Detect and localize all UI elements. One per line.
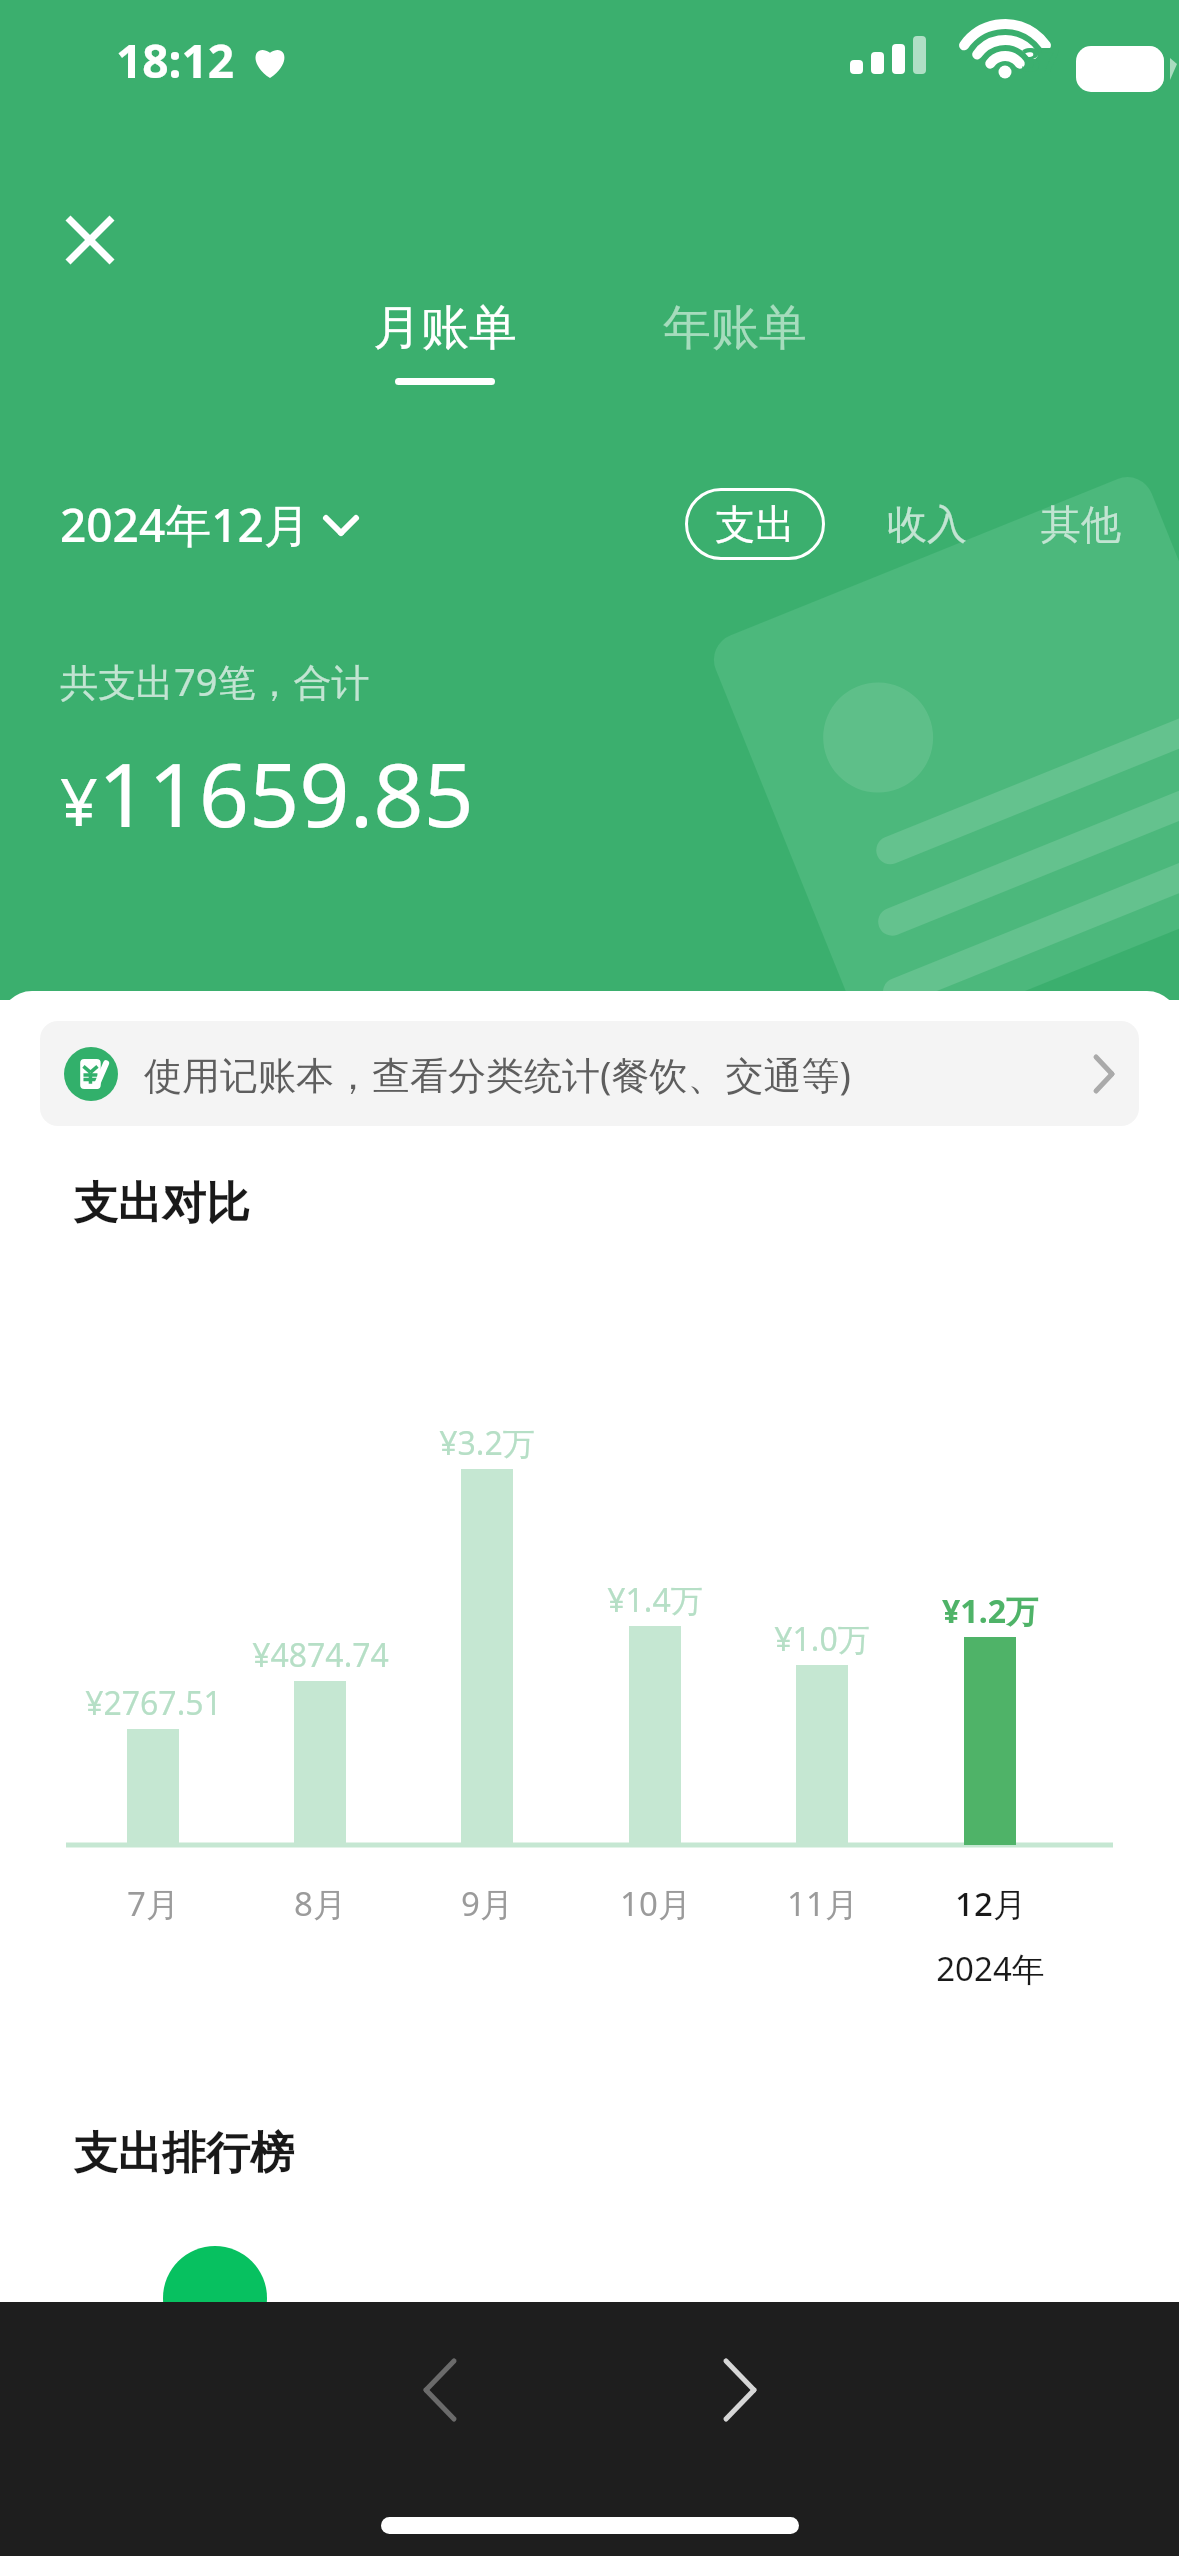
button[interactable]: 月账单 xyxy=(345,290,545,393)
staticText: 使用记账本，查看分类统计(餐饮、交通等) xyxy=(144,1048,851,1100)
staticText: ¥1.4万 xyxy=(607,1578,703,1622)
staticText: ¥4874.74 xyxy=(252,1633,389,1677)
staticText: 11659.85 xyxy=(98,733,474,853)
staticText: 37 xyxy=(1021,36,1060,82)
staticText: 10月 xyxy=(620,1881,691,1926)
staticText: 支出 xyxy=(715,499,795,549)
staticText: 7月 xyxy=(127,1881,179,1926)
staticText: ¥3.2万 xyxy=(439,1421,535,1465)
staticText: 2024年12月 xyxy=(60,493,310,556)
button[interactable]: 年账单 xyxy=(635,290,835,393)
button[interactable]: 后退 xyxy=(380,2330,500,2450)
button[interactable]: 支出 xyxy=(685,488,825,560)
staticText: ¥2767.51 xyxy=(85,1681,222,1725)
staticText: 月账单 xyxy=(373,298,517,358)
staticText: 2024年 xyxy=(936,1946,1045,1991)
button[interactable]: 收入 xyxy=(875,485,979,563)
staticText: 收入 xyxy=(887,499,967,549)
staticText: 共支出79笔，合计 xyxy=(60,655,370,707)
staticText: ¥1.2万 xyxy=(942,1589,1038,1633)
button[interactable]: 前进 xyxy=(680,2330,800,2450)
button[interactable]: 2024年12月 xyxy=(60,493,358,556)
staticText: 9月 xyxy=(461,1881,513,1926)
staticText: 支出排行榜 xyxy=(74,2126,294,2181)
staticText: 11月 xyxy=(787,1881,858,1926)
staticText: 年账单 xyxy=(663,298,807,358)
button[interactable]: 其他 xyxy=(1029,485,1133,563)
staticText: ¥ xyxy=(60,755,98,845)
button[interactable]: 关闭 xyxy=(36,186,144,294)
staticText: 18:12 xyxy=(116,29,235,92)
staticText: ¥1.0万 xyxy=(774,1617,870,1661)
staticText: 12月 xyxy=(955,1881,1026,1926)
staticText: 其他 xyxy=(1041,499,1121,549)
button[interactable]: 使用记账本，查看分类统计(餐饮、交通等) xyxy=(40,1021,1139,1126)
staticText: 8月 xyxy=(294,1881,346,1926)
staticText: 支出对比 xyxy=(74,1176,250,1231)
